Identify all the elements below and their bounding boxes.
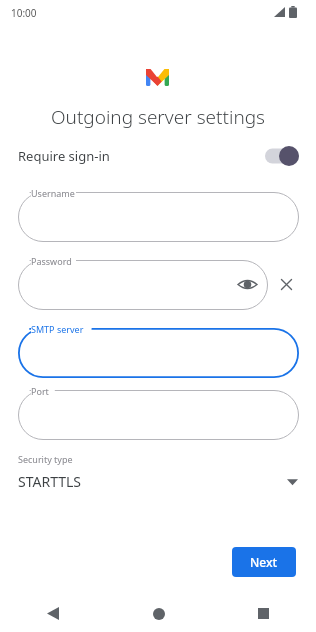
staticText: Outgoing server settings bbox=[0, 104, 316, 130]
staticText: Password bbox=[31, 255, 72, 267]
staticText: STARTTLS bbox=[18, 472, 82, 491]
button[interactable]: Security type bbox=[0, 453, 316, 499]
button[interactable]: Username bbox=[18, 192, 299, 242]
button[interactable]: Recent apps bbox=[211, 595, 316, 632]
button[interactable]: Back bbox=[0, 595, 106, 632]
staticText: Next bbox=[250, 554, 278, 570]
button[interactable]: Clear password bbox=[276, 274, 297, 295]
staticText: Security type bbox=[18, 453, 73, 465]
button[interactable]: SMTP server bbox=[18, 328, 299, 378]
button[interactable]: Show password bbox=[237, 274, 258, 295]
button[interactable]: Port bbox=[18, 390, 299, 440]
button[interactable]: Password bbox=[18, 260, 268, 310]
staticText: SMTP server bbox=[31, 323, 84, 335]
button[interactable]: Require sign-in bbox=[265, 146, 299, 166]
staticText: 10:00 bbox=[11, 6, 37, 20]
button[interactable]: Home bbox=[106, 595, 211, 632]
staticText: Username bbox=[31, 187, 75, 199]
button[interactable]: Next bbox=[232, 547, 296, 577]
button[interactable]: Require sign-in bbox=[0, 141, 316, 171]
staticText: Port bbox=[31, 385, 49, 397]
staticText: Require sign-in bbox=[18, 147, 110, 165]
